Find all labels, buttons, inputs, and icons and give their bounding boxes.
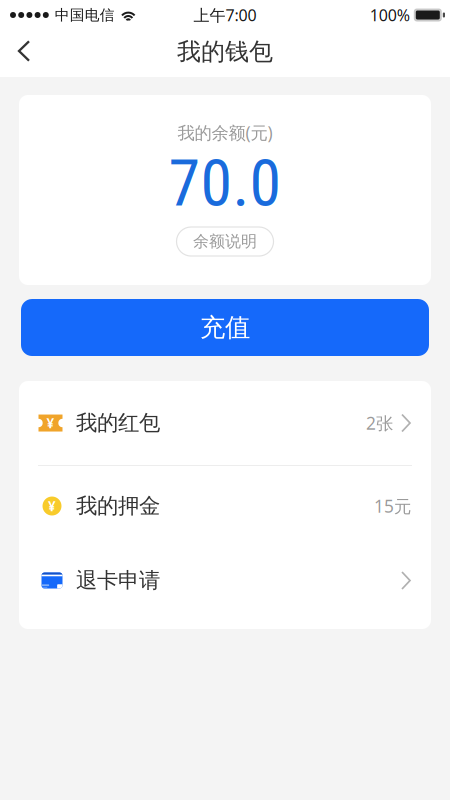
button[interactable]: 余额说明 — [176, 227, 273, 256]
staticText: ¥ — [48, 497, 56, 515]
staticText: 我的押金 — [76, 493, 160, 519]
staticText: 100% — [370, 4, 410, 26]
button[interactable]: ¥ — [19, 466, 431, 546]
staticText: 我的余额(元) — [177, 121, 272, 144]
staticText: ¥ — [46, 414, 54, 432]
staticText: 中国电信 — [55, 6, 115, 24]
staticText: 上午7:00 — [193, 4, 256, 26]
staticText: 2张 — [366, 411, 393, 434]
staticText: 我的红包 — [76, 410, 160, 436]
staticText: 余额说明 — [193, 232, 257, 251]
button[interactable]: 退卡申请 — [19, 546, 431, 615]
staticText: 我的钱包 — [177, 37, 273, 66]
staticText: 15元 — [374, 494, 411, 517]
button[interactable]: 充值 — [21, 299, 429, 356]
staticText: 退卡申请 — [76, 567, 160, 594]
button[interactable]: ¥ — [19, 381, 431, 465]
staticText: 70.0 — [168, 146, 281, 221]
button[interactable]: 返回 — [0, 30, 48, 77]
staticText: 充值 — [200, 312, 250, 343]
